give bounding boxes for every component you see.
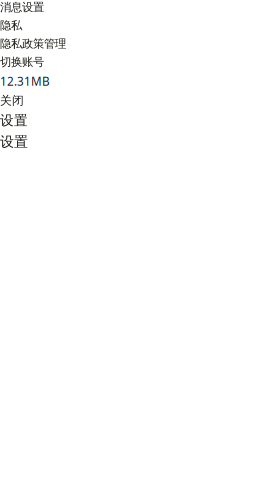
staticText: 12.31MB — [0, 73, 50, 89]
staticText: 消息设置 — [0, 0, 44, 14]
staticText: 关闭 — [0, 93, 24, 108]
staticText: 设置 — [0, 112, 28, 129]
staticText: 设置 — [0, 133, 28, 151]
staticText: 隐私 — [0, 18, 22, 33]
staticText: 切换账号 — [0, 55, 44, 69]
staticText: 隐私政策管理 — [0, 37, 66, 51]
